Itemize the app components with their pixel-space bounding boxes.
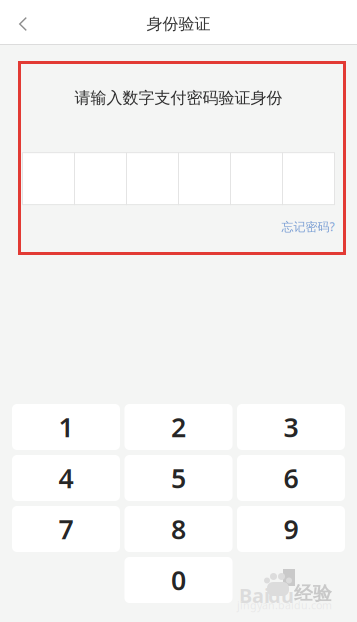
staticText: 2 xyxy=(171,409,186,445)
staticText: 6 xyxy=(283,460,298,496)
staticText: Bai xyxy=(239,582,270,609)
staticText: 8 xyxy=(171,511,186,547)
button[interactable]: 忘记密码? xyxy=(281,219,334,235)
staticText: 4 xyxy=(58,460,73,496)
button[interactable]: 5 xyxy=(124,455,232,501)
staticText: 忘记密码? xyxy=(281,219,334,235)
staticText: 3 xyxy=(283,409,298,445)
button[interactable]: 9 xyxy=(237,506,345,552)
staticText: jingyan.baidu.com xyxy=(237,598,332,612)
button[interactable]: 1 xyxy=(12,404,120,450)
button[interactable]: Back xyxy=(4,2,42,46)
staticText: 5 xyxy=(171,460,186,496)
button[interactable]: 7 xyxy=(12,506,120,552)
staticText: du xyxy=(268,582,294,609)
staticText: 1 xyxy=(58,409,73,445)
button[interactable]: 2 xyxy=(124,404,232,450)
button[interactable]: 4 xyxy=(12,455,120,501)
staticText: 身份验证 xyxy=(146,14,210,34)
staticText: 9 xyxy=(283,511,298,547)
staticText: 经验 xyxy=(294,582,332,605)
button[interactable]: 8 xyxy=(124,506,232,552)
staticText: 0 xyxy=(171,562,186,598)
button[interactable]: 0 xyxy=(124,557,232,603)
button[interactable]: 6 xyxy=(237,455,345,501)
button[interactable]: 3 xyxy=(237,404,345,450)
staticText: 7 xyxy=(58,511,73,547)
staticText: 请输入数字支付密码验证身份 xyxy=(74,88,282,108)
